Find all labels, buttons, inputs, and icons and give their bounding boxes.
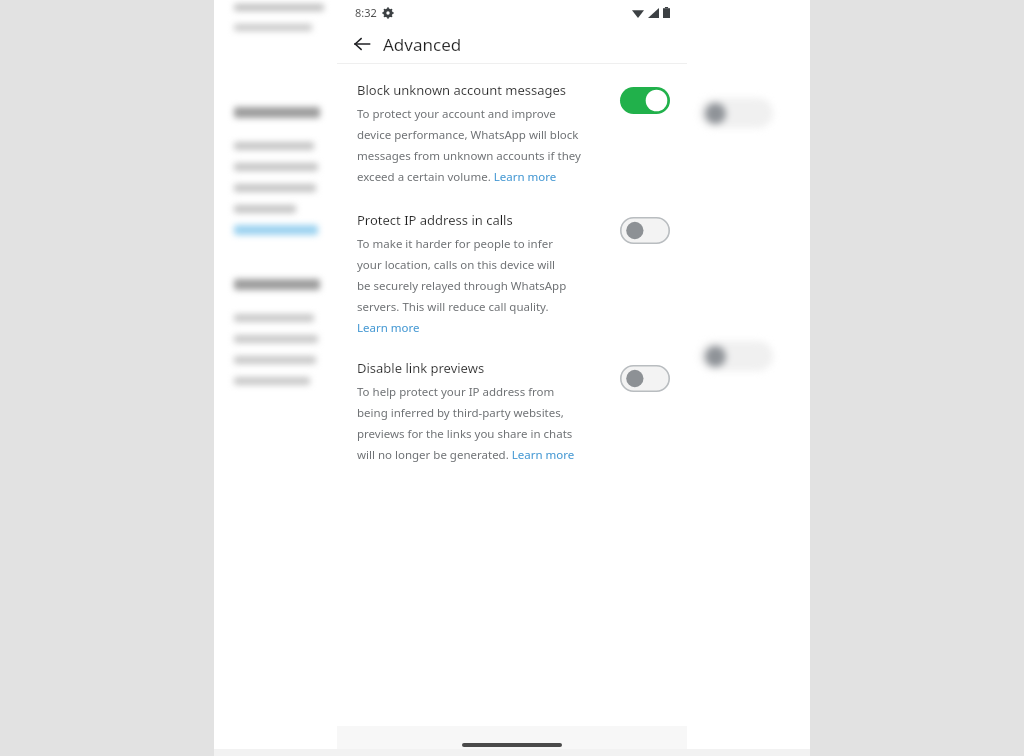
button[interactable]: Learn more bbox=[357, 320, 420, 336]
button[interactable]: Off bbox=[617, 213, 673, 247]
button[interactable]: Disable link previews bbox=[337, 359, 687, 463]
staticText: device performance, WhatsApp will block bbox=[357, 127, 579, 143]
button[interactable]: Protect IP address in calls bbox=[337, 211, 687, 336]
staticText: your location, calls on this device will bbox=[357, 257, 556, 273]
staticText: Learn more bbox=[357, 320, 420, 336]
button[interactable]: Back bbox=[345, 27, 379, 61]
staticText: To help protect your IP address from bbox=[357, 384, 555, 400]
staticText: Disable link previews bbox=[357, 359, 485, 377]
staticText: be securely relayed through WhatsApp bbox=[357, 278, 567, 294]
staticText: being inferred by third-party websites, bbox=[357, 405, 564, 421]
staticText: previews for the links you share in chat… bbox=[357, 426, 573, 442]
button[interactable]: On bbox=[617, 83, 673, 117]
button[interactable]: Off bbox=[617, 361, 673, 395]
staticText: messages from unknown accounts if they bbox=[357, 148, 581, 164]
staticText: To protect your account and improve bbox=[357, 106, 556, 122]
staticText: Protect IP address in calls bbox=[357, 211, 513, 229]
staticText: 8:32 bbox=[355, 5, 377, 20]
staticText: Block unknown account messages bbox=[357, 81, 567, 99]
staticText: servers. This will reduce call quality. bbox=[357, 299, 549, 315]
button[interactable]: Block unknown account messages bbox=[337, 81, 687, 185]
staticText: To make it harder for people to infer bbox=[357, 236, 553, 252]
staticText: exceed a certain volume. Learn more bbox=[357, 169, 557, 185]
staticText: will no longer be generated. Learn more bbox=[357, 447, 575, 463]
staticText: Advanced bbox=[383, 33, 462, 56]
